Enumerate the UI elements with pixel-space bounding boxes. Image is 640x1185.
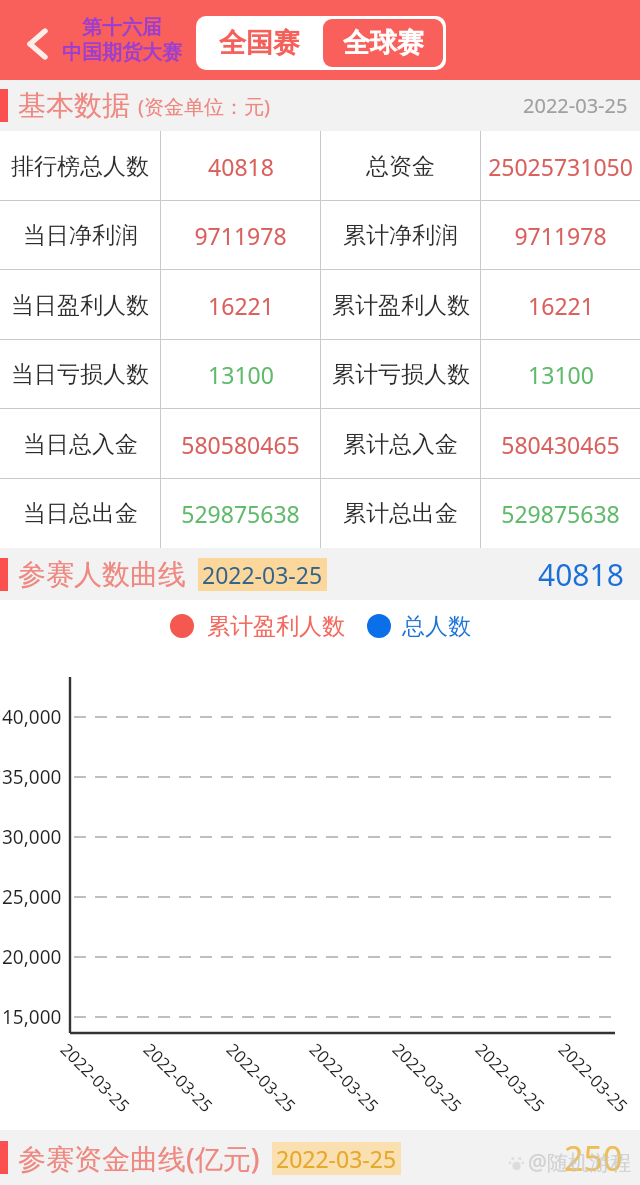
button[interactable]: 580430465 (481, 409, 640, 479)
staticText: 全国赛 (219, 26, 300, 60)
staticText: 累计总出金 (343, 499, 458, 528)
button[interactable]: 529875638 (161, 479, 320, 548)
staticText: 529875638 (501, 498, 620, 529)
button[interactable]: 9711978 (161, 201, 320, 270)
staticText: 15,000 (2, 1004, 62, 1030)
staticText: 35,000 (2, 764, 62, 790)
button[interactable]: 16221 (161, 270, 320, 340)
staticText: 当日总入金 (23, 430, 138, 459)
staticText: 40818 (208, 151, 274, 182)
button[interactable]: 13100 (481, 340, 640, 409)
button[interactable]: 累计净利润 (321, 201, 480, 270)
staticText: 529875638 (181, 498, 300, 529)
button[interactable]: 参赛人数曲线 (0, 548, 640, 600)
button[interactable]: 全国赛 (196, 16, 323, 70)
button[interactable]: 当日总出金 (0, 479, 160, 548)
staticText: 当日净利润 (23, 221, 138, 250)
staticText: 30,000 (2, 824, 62, 850)
staticText: 16221 (208, 290, 274, 321)
button[interactable]: 累计总出金 (321, 479, 480, 548)
button[interactable]: 当日盈利人数 (0, 270, 160, 340)
staticText: 13100 (208, 359, 274, 390)
staticText: 2022-03-25 (56, 1038, 135, 1117)
staticText: 中国期货大赛 (62, 40, 182, 65)
staticText: 40818 (538, 554, 624, 595)
staticText: 排行榜总人数 (11, 152, 149, 181)
staticText: 参赛人数曲线 (18, 557, 186, 592)
button[interactable]: 总资金 (321, 131, 480, 201)
button[interactable]: 累计总入金 (321, 409, 480, 479)
staticText: 580430465 (501, 429, 620, 460)
staticText: 基本数据 (18, 88, 130, 123)
button[interactable]: 累计亏损人数 (321, 340, 480, 409)
staticText: 2022-03-25 (139, 1038, 218, 1117)
button[interactable]: Back (13, 20, 61, 68)
staticText: (资金单位：元) (138, 93, 270, 120)
button[interactable]: 16221 (481, 270, 640, 340)
staticText: 第十六届 (82, 15, 162, 40)
staticText: 16221 (528, 290, 594, 321)
staticText: 2022-03-25 (471, 1038, 550, 1117)
button[interactable]: 580580465 (161, 409, 320, 479)
staticText: 2022-03-25 (305, 1038, 384, 1117)
staticText: 9711978 (514, 220, 607, 251)
staticText: 13100 (528, 359, 594, 390)
staticText: 25025731050 (488, 151, 633, 182)
staticText: 2022-03-25 (276, 1143, 397, 1174)
staticText: 25,000 (2, 884, 62, 910)
staticText: 参赛资金曲线(亿元) (18, 1139, 260, 1177)
button[interactable]: 529875638 (481, 479, 640, 548)
button[interactable]: 当日亏损人数 (0, 340, 160, 409)
button[interactable]: 参赛资金曲线(亿元) (0, 1130, 640, 1185)
staticText: 总资金 (366, 152, 435, 181)
button[interactable]: 13100 (161, 340, 320, 409)
staticText: 当日亏损人数 (11, 360, 149, 389)
staticText: 总人数 (402, 612, 471, 641)
staticText: 2022-03-25 (222, 1038, 301, 1117)
staticText: 累计盈利人数 (207, 612, 345, 641)
staticText: 累计总入金 (343, 430, 458, 459)
staticText: 累计盈利人数 (332, 291, 470, 320)
staticText: 580580465 (181, 429, 300, 460)
staticText: 2022-03-25 (388, 1038, 467, 1117)
staticText: 累计亏损人数 (332, 360, 470, 389)
staticText: 2022-03-25 (523, 92, 628, 119)
button[interactable]: 9711978 (481, 201, 640, 270)
staticText: 全球赛 (343, 26, 424, 60)
staticText: 2022-03-25 (202, 559, 323, 590)
staticText: 20,000 (2, 944, 62, 970)
button[interactable]: 25025731050 (481, 131, 640, 201)
button[interactable]: 当日总入金 (0, 409, 160, 479)
staticText: @随机游程 (528, 1148, 631, 1177)
staticText: 9711978 (194, 220, 287, 251)
staticText: 当日盈利人数 (11, 291, 149, 320)
staticText: 40,000 (2, 704, 62, 730)
button[interactable]: 40818 (161, 131, 320, 201)
staticText: 当日总出金 (23, 499, 138, 528)
button[interactable]: 基本数据 (0, 80, 640, 131)
button[interactable]: 累计盈利人数 (321, 270, 480, 340)
staticText: 2022-03-25 (554, 1038, 633, 1117)
staticText: 累计净利润 (343, 221, 458, 250)
button[interactable]: 排行榜总人数 (0, 131, 160, 201)
staticText: 250 (564, 1135, 623, 1181)
button[interactable]: 全球赛 (323, 19, 443, 67)
button[interactable]: 当日净利润 (0, 201, 160, 270)
